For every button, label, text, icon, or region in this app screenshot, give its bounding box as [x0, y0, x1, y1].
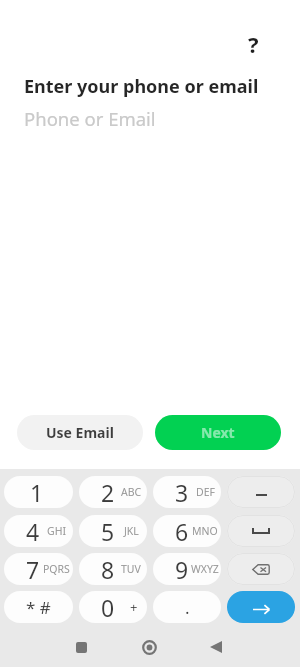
button[interactable]: 4 [4, 515, 73, 547]
button[interactable]: 0 [79, 591, 147, 623]
button[interactable]: Home [131, 629, 167, 665]
staticText: 0 [101, 592, 115, 623]
staticText: 8 [101, 554, 115, 585]
staticText: 1 [30, 477, 44, 508]
button[interactable]: . [153, 591, 221, 623]
button[interactable]: 9 [153, 553, 221, 585]
button[interactable]: 7 [4, 553, 73, 585]
button[interactable]: Next [155, 415, 281, 450]
staticText: GHI [47, 524, 66, 538]
staticText: Next [201, 423, 235, 442]
staticText: 5 [101, 516, 115, 547]
button[interactable]: 3 [153, 476, 221, 508]
staticText: 9 [175, 554, 189, 585]
staticText: 6 [175, 516, 189, 547]
staticText: Phone or Email [24, 106, 156, 131]
staticText: WXYZ [191, 562, 219, 576]
staticText: JKL [124, 524, 139, 538]
button[interactable]: 6 [153, 515, 221, 547]
button[interactable]: Enter [227, 591, 295, 623]
button[interactable]: * # [4, 591, 73, 623]
button[interactable]: Recents [63, 629, 99, 665]
staticText: DEF [196, 485, 215, 499]
staticText: ABC [121, 485, 142, 499]
staticText: 4 [26, 516, 40, 547]
staticText: Use Email [46, 423, 114, 442]
staticText: PQRS [43, 562, 70, 576]
staticText: TUV [121, 562, 141, 576]
staticText: 3 [175, 477, 189, 508]
staticText: 2 [101, 477, 115, 508]
staticText: Enter your phone or email [24, 74, 259, 99]
button[interactable]: Dash [227, 476, 295, 508]
staticText: * # [26, 596, 51, 619]
button[interactable]: 5 [79, 515, 147, 547]
staticText: ? [248, 29, 259, 59]
button[interactable]: Space [227, 515, 295, 547]
staticText: + [130, 598, 138, 616]
button[interactable]: 2 [79, 476, 147, 508]
button[interactable]: 1 [4, 476, 73, 508]
staticText: MNO [192, 524, 218, 538]
button[interactable]: Back [198, 629, 234, 665]
button[interactable]: Use Email [17, 415, 143, 450]
staticText: 7 [26, 554, 40, 585]
button[interactable]: 8 [79, 553, 147, 585]
button[interactable]: Backspace [227, 553, 295, 585]
staticText: . [185, 596, 190, 619]
button[interactable]: Help [235, 25, 272, 62]
